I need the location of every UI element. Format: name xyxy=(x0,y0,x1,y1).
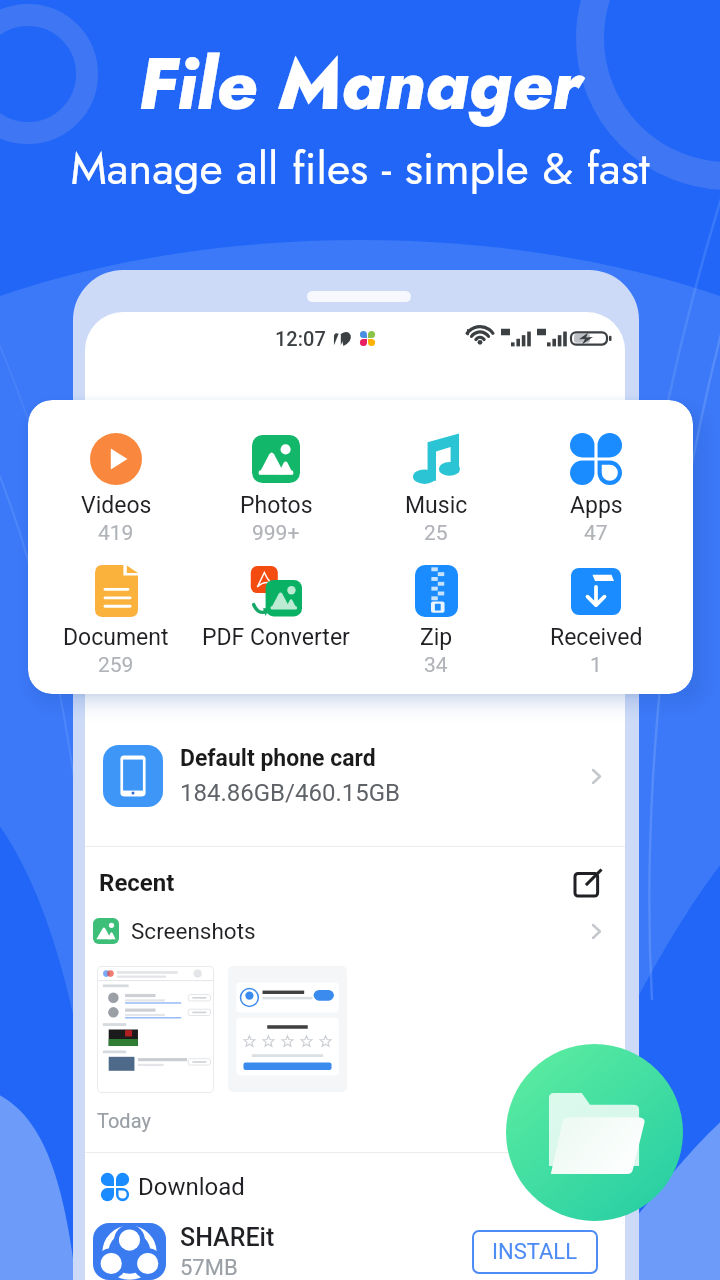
staticText: 12:07 xyxy=(275,327,326,350)
staticText: Music xyxy=(405,492,468,519)
button[interactable]: Zip xyxy=(356,565,516,678)
button[interactable]: Open files xyxy=(506,1044,683,1221)
button[interactable]: PDF Converter xyxy=(196,565,356,678)
staticText: 34 xyxy=(424,653,448,678)
staticText: Zip xyxy=(420,624,453,651)
staticText: Photos xyxy=(240,492,313,519)
staticText: 57MB xyxy=(180,1255,238,1280)
button[interactable]: Edit xyxy=(575,870,601,896)
button[interactable]: Default phone card xyxy=(85,706,625,846)
staticText: Videos xyxy=(81,492,152,519)
staticText: Manage all files - simple & fast xyxy=(0,136,720,201)
staticText: Document xyxy=(63,624,169,651)
button[interactable]: Received xyxy=(516,565,676,678)
staticText: SHAREit xyxy=(180,1223,275,1252)
staticText: 47 xyxy=(584,521,608,546)
button[interactable]: Music xyxy=(356,433,516,546)
button[interactable]: INSTALL xyxy=(472,1230,598,1274)
staticText: File Manager xyxy=(0,33,720,136)
staticText: Apps xyxy=(570,492,623,519)
staticText: Download xyxy=(138,1173,245,1201)
staticText: Default phone card xyxy=(180,745,376,772)
staticText: 999+ xyxy=(252,521,300,546)
button[interactable]: Screenshots xyxy=(85,918,625,944)
staticText: 259 xyxy=(98,653,134,678)
button[interactable]: Apps xyxy=(516,433,676,546)
button[interactable]: Videos xyxy=(36,433,196,546)
staticText: 25 xyxy=(424,521,448,546)
staticText: 419 xyxy=(98,521,134,546)
staticText: Received xyxy=(550,624,643,651)
staticText: Screenshots xyxy=(131,918,256,944)
button[interactable]: Photos xyxy=(196,433,356,546)
staticText: Today xyxy=(97,1109,151,1132)
staticText: PDF Converter xyxy=(202,624,350,651)
staticText: 184.86GB/460.15GB xyxy=(180,779,401,807)
staticText: INSTALL xyxy=(492,1239,578,1265)
staticText: 1 xyxy=(590,653,602,678)
staticText: Recent xyxy=(99,869,175,897)
button[interactable]: Document xyxy=(36,565,196,678)
